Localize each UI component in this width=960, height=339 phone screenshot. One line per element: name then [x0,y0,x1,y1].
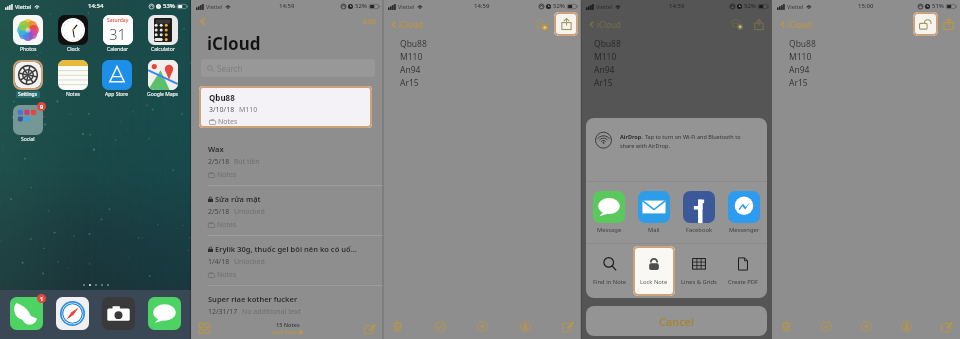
staticText: Qbu88 [789,38,816,50]
staticText: Sửa rửa mặt [215,194,261,204]
staticText: Notes [218,117,238,127]
button[interactable]: Edit [357,14,383,28]
staticText: M110 [400,51,423,63]
button[interactable]: iCloud [776,17,814,32]
button[interactable]: 9 [13,105,43,135]
staticText: iCloud [399,19,423,30]
staticText: Calendar [107,46,129,53]
staticText: Super riae kother fucker [208,294,298,304]
staticText: Viettel [206,3,223,10]
button[interactable]: Super riae kother fucker [191,286,383,317]
button[interactable]: Back [196,15,209,28]
button[interactable]: iCloud [387,17,425,32]
staticText: 3/10/18 [209,105,235,115]
staticText: Viettel [15,3,32,10]
button[interactable]: iCloud [585,17,623,32]
staticText: 2/5/18 [208,207,230,217]
staticText: Viettel [596,3,613,10]
staticText: Lock Now [272,328,297,335]
button[interactable]: Message [593,191,625,234]
staticText: Qbu88 [594,38,621,50]
button[interactable] [148,15,178,45]
button[interactable]: Share [751,16,767,32]
button[interactable]: Add attachment [474,318,490,334]
button[interactable]: Markup [898,318,914,334]
staticText: Settings [18,91,38,98]
staticText: M110 [239,105,258,115]
button[interactable]: Markup [517,318,533,334]
staticText: iCloud [788,19,812,30]
staticText: Erylik 30g, thuốc gel bôi nên ko có uố..… [215,244,357,254]
button[interactable]: Erylik 30g, thuốc gel bôi nên ko có uố..… [191,236,383,286]
staticText: 51% [932,2,944,10]
staticText: M110 [594,51,617,63]
staticText: Tap to turn on Wi-Fi and Bluetooth to [645,133,741,140]
button[interactable]: Wax [191,136,383,186]
button[interactable]: Find in Note [589,246,631,296]
button[interactable]: Gallery view [199,323,210,334]
staticText: Calculator [151,46,175,53]
button[interactable]: Lock Note [633,246,675,296]
staticText: Mail [648,226,660,234]
button[interactable]: Lock Now [272,328,303,335]
button[interactable] [58,15,88,45]
button[interactable]: Lock note [913,12,938,36]
button[interactable]: Lines & Grids [678,246,720,296]
button[interactable]: Share [554,12,578,36]
button[interactable]: Add people [729,16,745,32]
button[interactable]: Sửa rửa mặt [191,186,383,236]
button[interactable]: Mail [638,191,670,234]
staticText: M110 [789,51,812,63]
staticText: AirDrop. [620,133,643,140]
staticText: 1/4/18 [208,257,230,267]
staticText: Create PDF [728,278,759,286]
button[interactable]: Cancel [586,306,767,336]
button[interactable]: New note [938,318,954,334]
button[interactable]: 1 [10,297,43,330]
button[interactable]: Checklist [432,318,448,334]
staticText: 53% [163,2,175,10]
staticText: Qbu88 [400,38,427,50]
button[interactable] [148,297,181,330]
button[interactable]: Facebook [683,191,715,234]
staticText: An94 [400,64,421,76]
staticText: 14:59 [279,2,295,10]
button[interactable] [102,60,132,90]
staticText: 2/5/18 [208,157,230,167]
staticText: Unlocked [234,207,265,217]
staticText: 15 Notes [276,321,300,328]
staticText: Qbu88 [209,92,235,103]
button[interactable] [102,297,135,330]
button[interactable]: New note [559,318,575,334]
button[interactable]: Saturday [103,15,133,45]
button[interactable] [148,60,178,90]
staticText: Facebook [686,226,712,234]
staticText: Message [597,226,622,234]
button[interactable]: Share [939,15,957,33]
button[interactable] [15,62,41,88]
button[interactable]: Checklist [818,318,834,334]
button[interactable]: Add attachment [858,318,874,334]
button[interactable]: Delete [389,318,405,334]
button[interactable]: Qbu88 [199,86,372,128]
staticText: Lines & Grids [681,278,717,286]
button[interactable]: New note [364,323,375,334]
staticText: Cancel [659,314,694,329]
staticText: 9 [40,103,44,110]
button[interactable] [56,297,89,330]
button[interactable]: Create PDF [722,246,764,296]
button[interactable]: Add people [532,15,550,33]
staticText: share with AirDrop. [620,142,670,149]
button[interactable]: Delete [778,318,794,334]
button[interactable] [13,15,43,45]
button[interactable] [58,60,88,90]
staticText: App Store [105,91,129,98]
staticText: 52% [355,2,367,10]
staticText: 31 [109,24,127,44]
staticText: Notes [217,170,237,180]
staticText: 1 [40,295,44,302]
staticText: 52% [744,2,756,10]
button[interactable]: Messenger [728,191,760,234]
staticText: Search [217,63,243,74]
